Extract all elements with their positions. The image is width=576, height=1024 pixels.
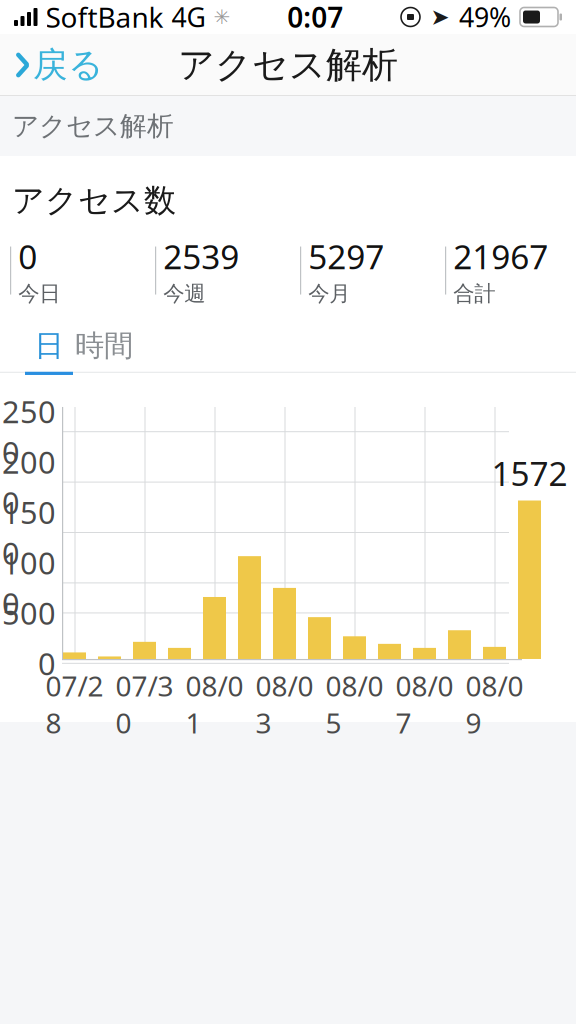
staticText: アクセス数 — [12, 181, 176, 220]
staticText: 1572 — [491, 451, 567, 495]
staticText: 2500 — [2, 391, 56, 472]
staticText: 5297 — [308, 234, 384, 279]
staticText: 08/05 — [325, 667, 383, 741]
staticText: 0:07 — [287, 0, 343, 36]
staticText: ➤ — [430, 4, 449, 30]
button[interactable]: 戻る — [0, 37, 117, 93]
staticText: 時間 — [75, 328, 133, 364]
staticText: 2539 — [163, 234, 239, 279]
staticText: 08/03 — [255, 667, 313, 741]
staticText: 08/01 — [185, 667, 243, 741]
staticText: 08/07 — [395, 667, 453, 741]
staticText: 今月 — [308, 281, 350, 307]
staticText: 08/09 — [465, 667, 523, 741]
staticText: 日 — [34, 328, 63, 364]
staticText: アクセス解析 — [12, 110, 174, 142]
staticText: 49% — [459, 0, 511, 35]
staticText: 4G — [171, 0, 205, 35]
staticText: 合計 — [453, 281, 495, 307]
button[interactable]: 時間 — [73, 329, 135, 363]
staticText: アクセス解析 — [178, 43, 398, 87]
staticText: 07/30 — [115, 667, 173, 741]
staticText: 500 — [2, 593, 56, 633]
staticText: 戻る — [33, 44, 103, 86]
staticText: 0 — [18, 234, 37, 279]
staticText: SoftBank — [45, 0, 163, 36]
staticText: 1500 — [2, 492, 56, 573]
staticText: 0 — [38, 643, 56, 684]
staticText: 07/28 — [45, 667, 103, 741]
staticText: 今日 — [18, 281, 60, 307]
staticText: ✳ — [213, 6, 230, 28]
staticText: 21967 — [453, 234, 548, 279]
staticText: 1000 — [2, 542, 56, 624]
button[interactable]: 日 — [25, 329, 73, 363]
staticText: 今週 — [163, 281, 205, 307]
staticText: 2000 — [2, 441, 56, 523]
